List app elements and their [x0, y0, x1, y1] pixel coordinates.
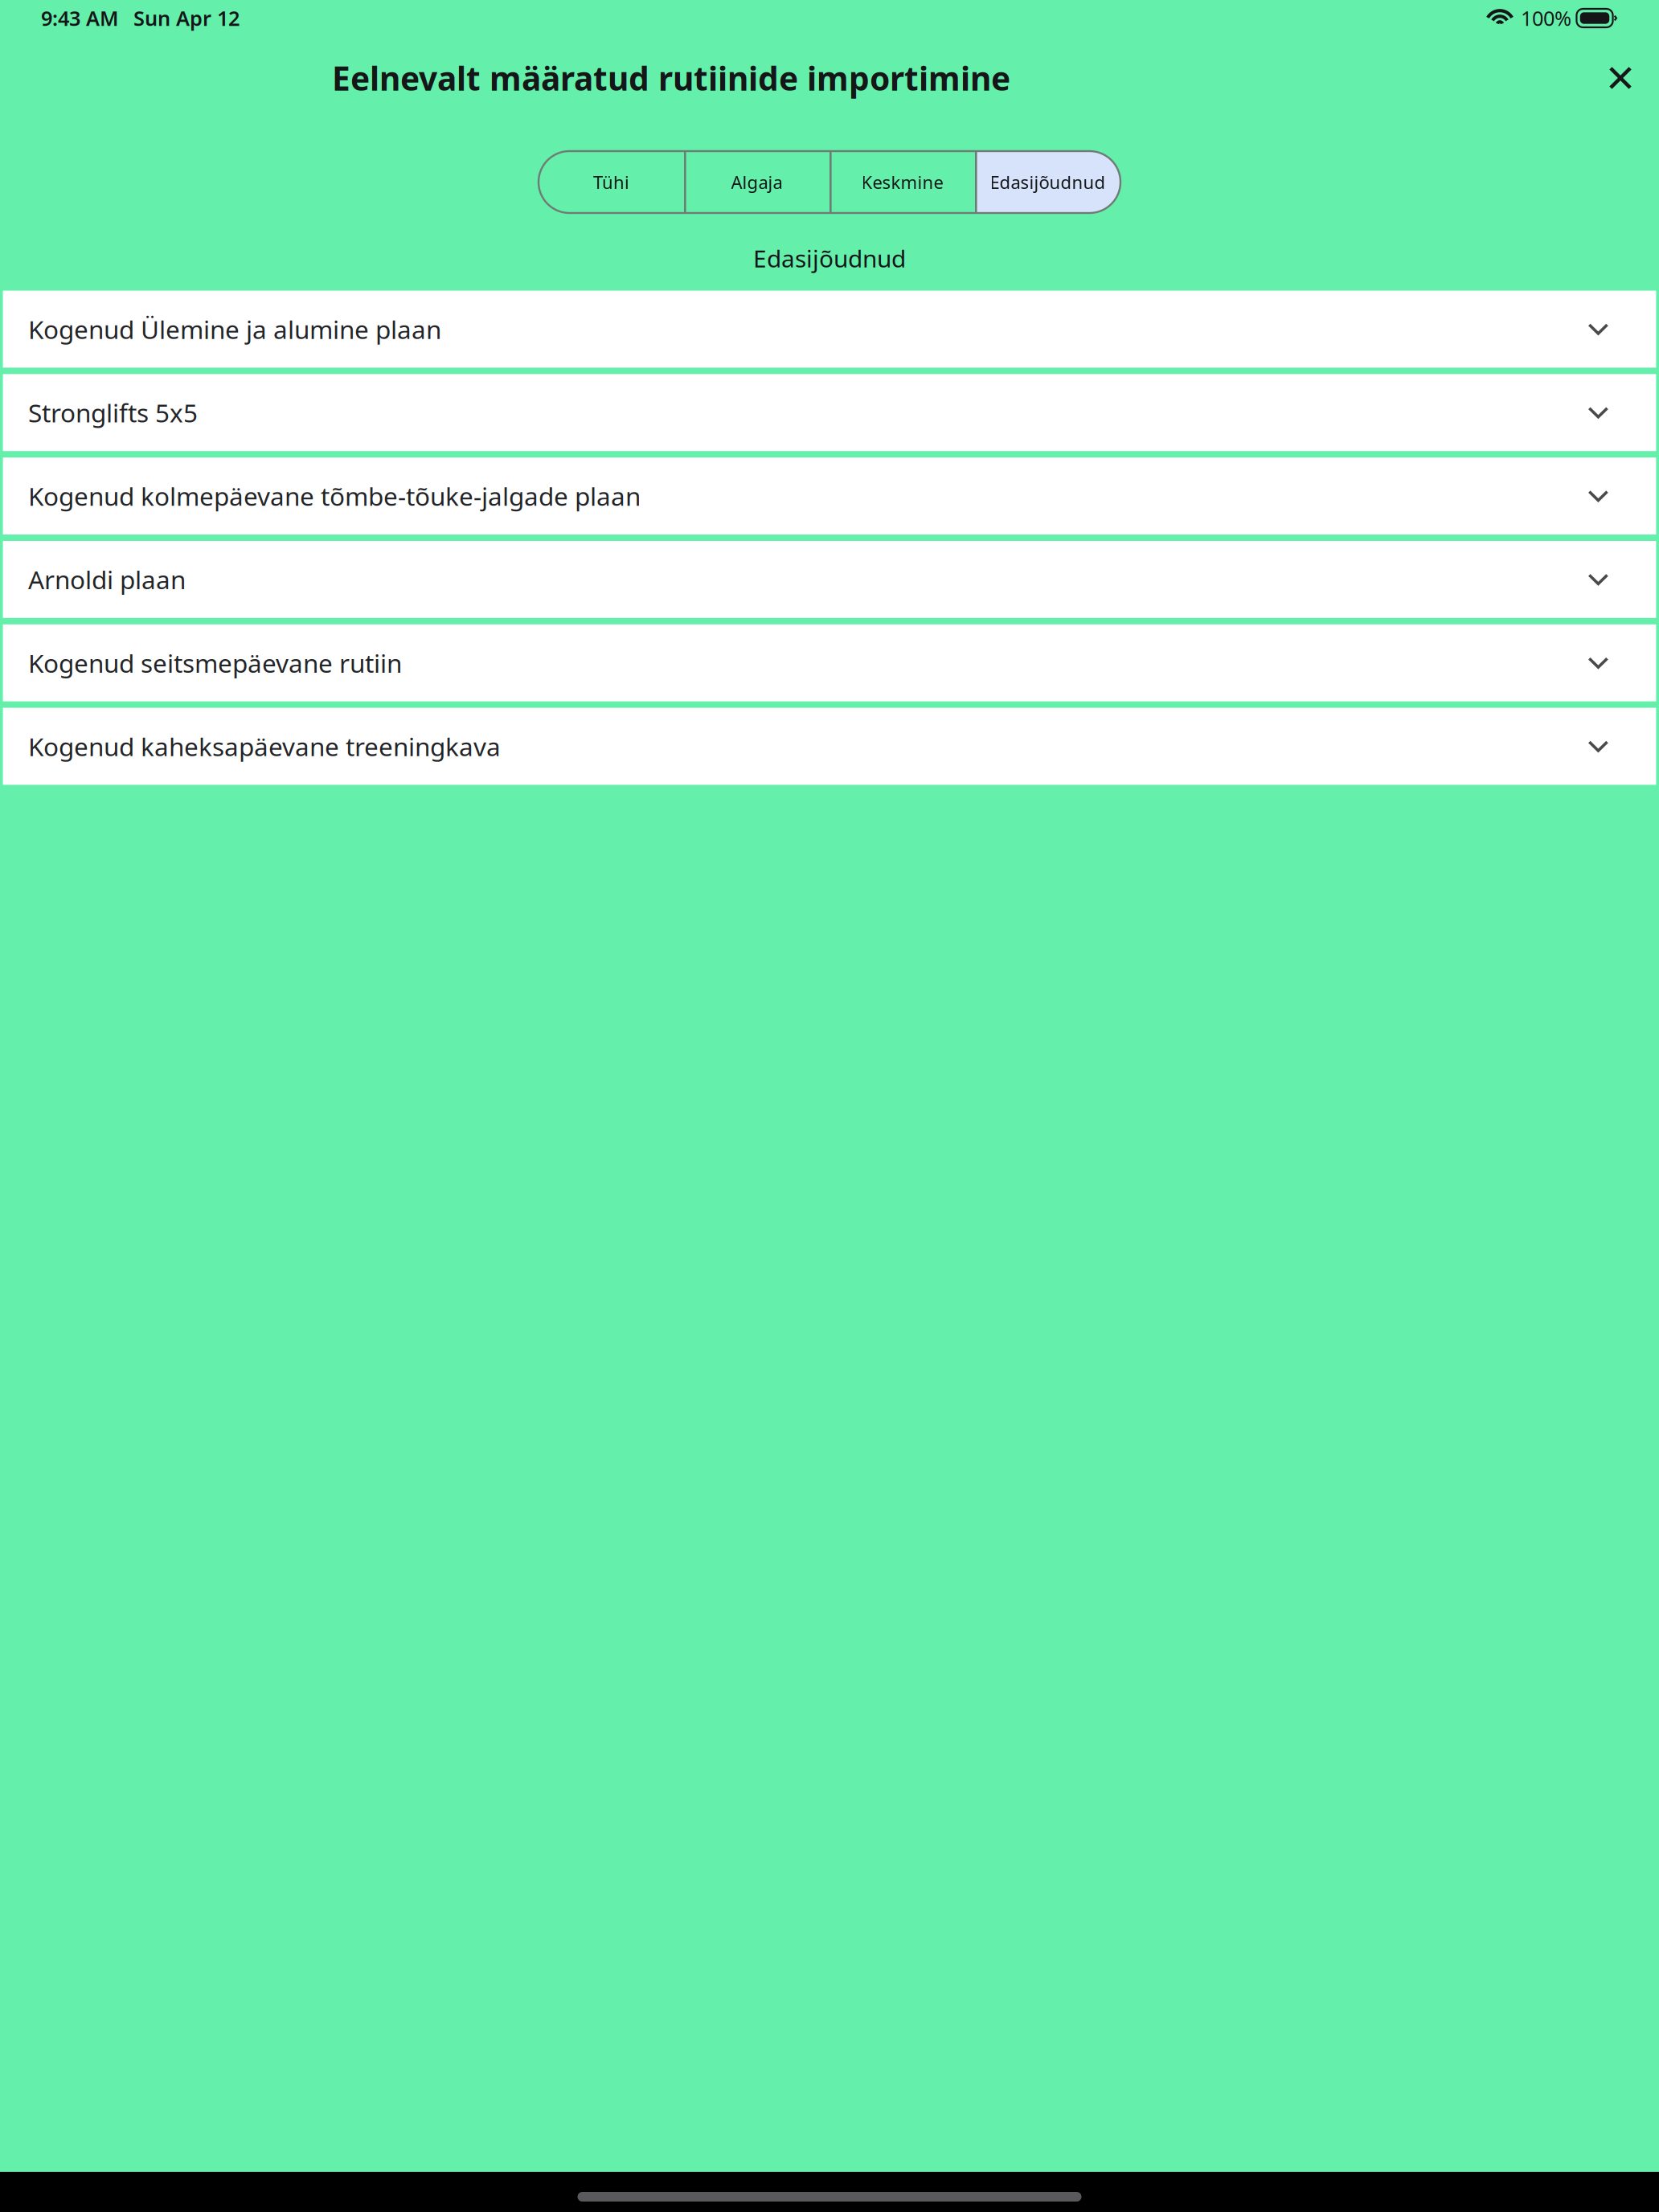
staticText: 100% — [1521, 4, 1571, 32]
button[interactable]: Arnoldi plaan — [3, 541, 1656, 618]
staticText: Arnoldi plaan — [28, 562, 186, 597]
button[interactable]: Close — [1593, 51, 1648, 105]
button[interactable]: Kogenud seitsmepäevane rutiin — [3, 624, 1656, 701]
staticText: Eelnevalt määratud rutiinide importimine — [332, 56, 1010, 100]
button[interactable]: Kogenud kaheksapäevane treeningkava — [3, 708, 1656, 785]
staticText: Edasijõudnud — [990, 170, 1106, 194]
button[interactable]: Algaja — [684, 151, 829, 213]
staticText: Kogenud Ülemine ja alumine plaan — [28, 312, 441, 346]
staticText: Kogenud kolmepäevane tõmbe-tõuke-jalgade… — [28, 479, 641, 513]
button[interactable]: Kogenud Ülemine ja alumine plaan — [3, 291, 1656, 368]
staticText: Edasijõudnud — [753, 242, 906, 274]
button[interactable]: Kogenud kolmepäevane tõmbe-tõuke-jalgade… — [3, 458, 1656, 535]
staticText: Tühi — [593, 170, 629, 194]
staticText: Stronglifts 5x5 — [28, 395, 198, 430]
button[interactable]: Stronglifts 5x5 — [3, 374, 1656, 451]
button[interactable]: Tühi — [539, 151, 684, 213]
button[interactable]: Keskmine — [829, 151, 975, 213]
staticText: Sun Apr 12 — [133, 4, 240, 32]
staticText: Keskmine — [861, 170, 943, 194]
button[interactable]: Edasijõudnud — [975, 151, 1120, 213]
staticText: Kogenud kaheksapäevane treeningkava — [28, 729, 501, 764]
staticText: Algaja — [731, 170, 782, 194]
staticText: Kogenud seitsmepäevane rutiin — [28, 646, 402, 680]
staticText: 9:43 AM — [41, 4, 119, 32]
